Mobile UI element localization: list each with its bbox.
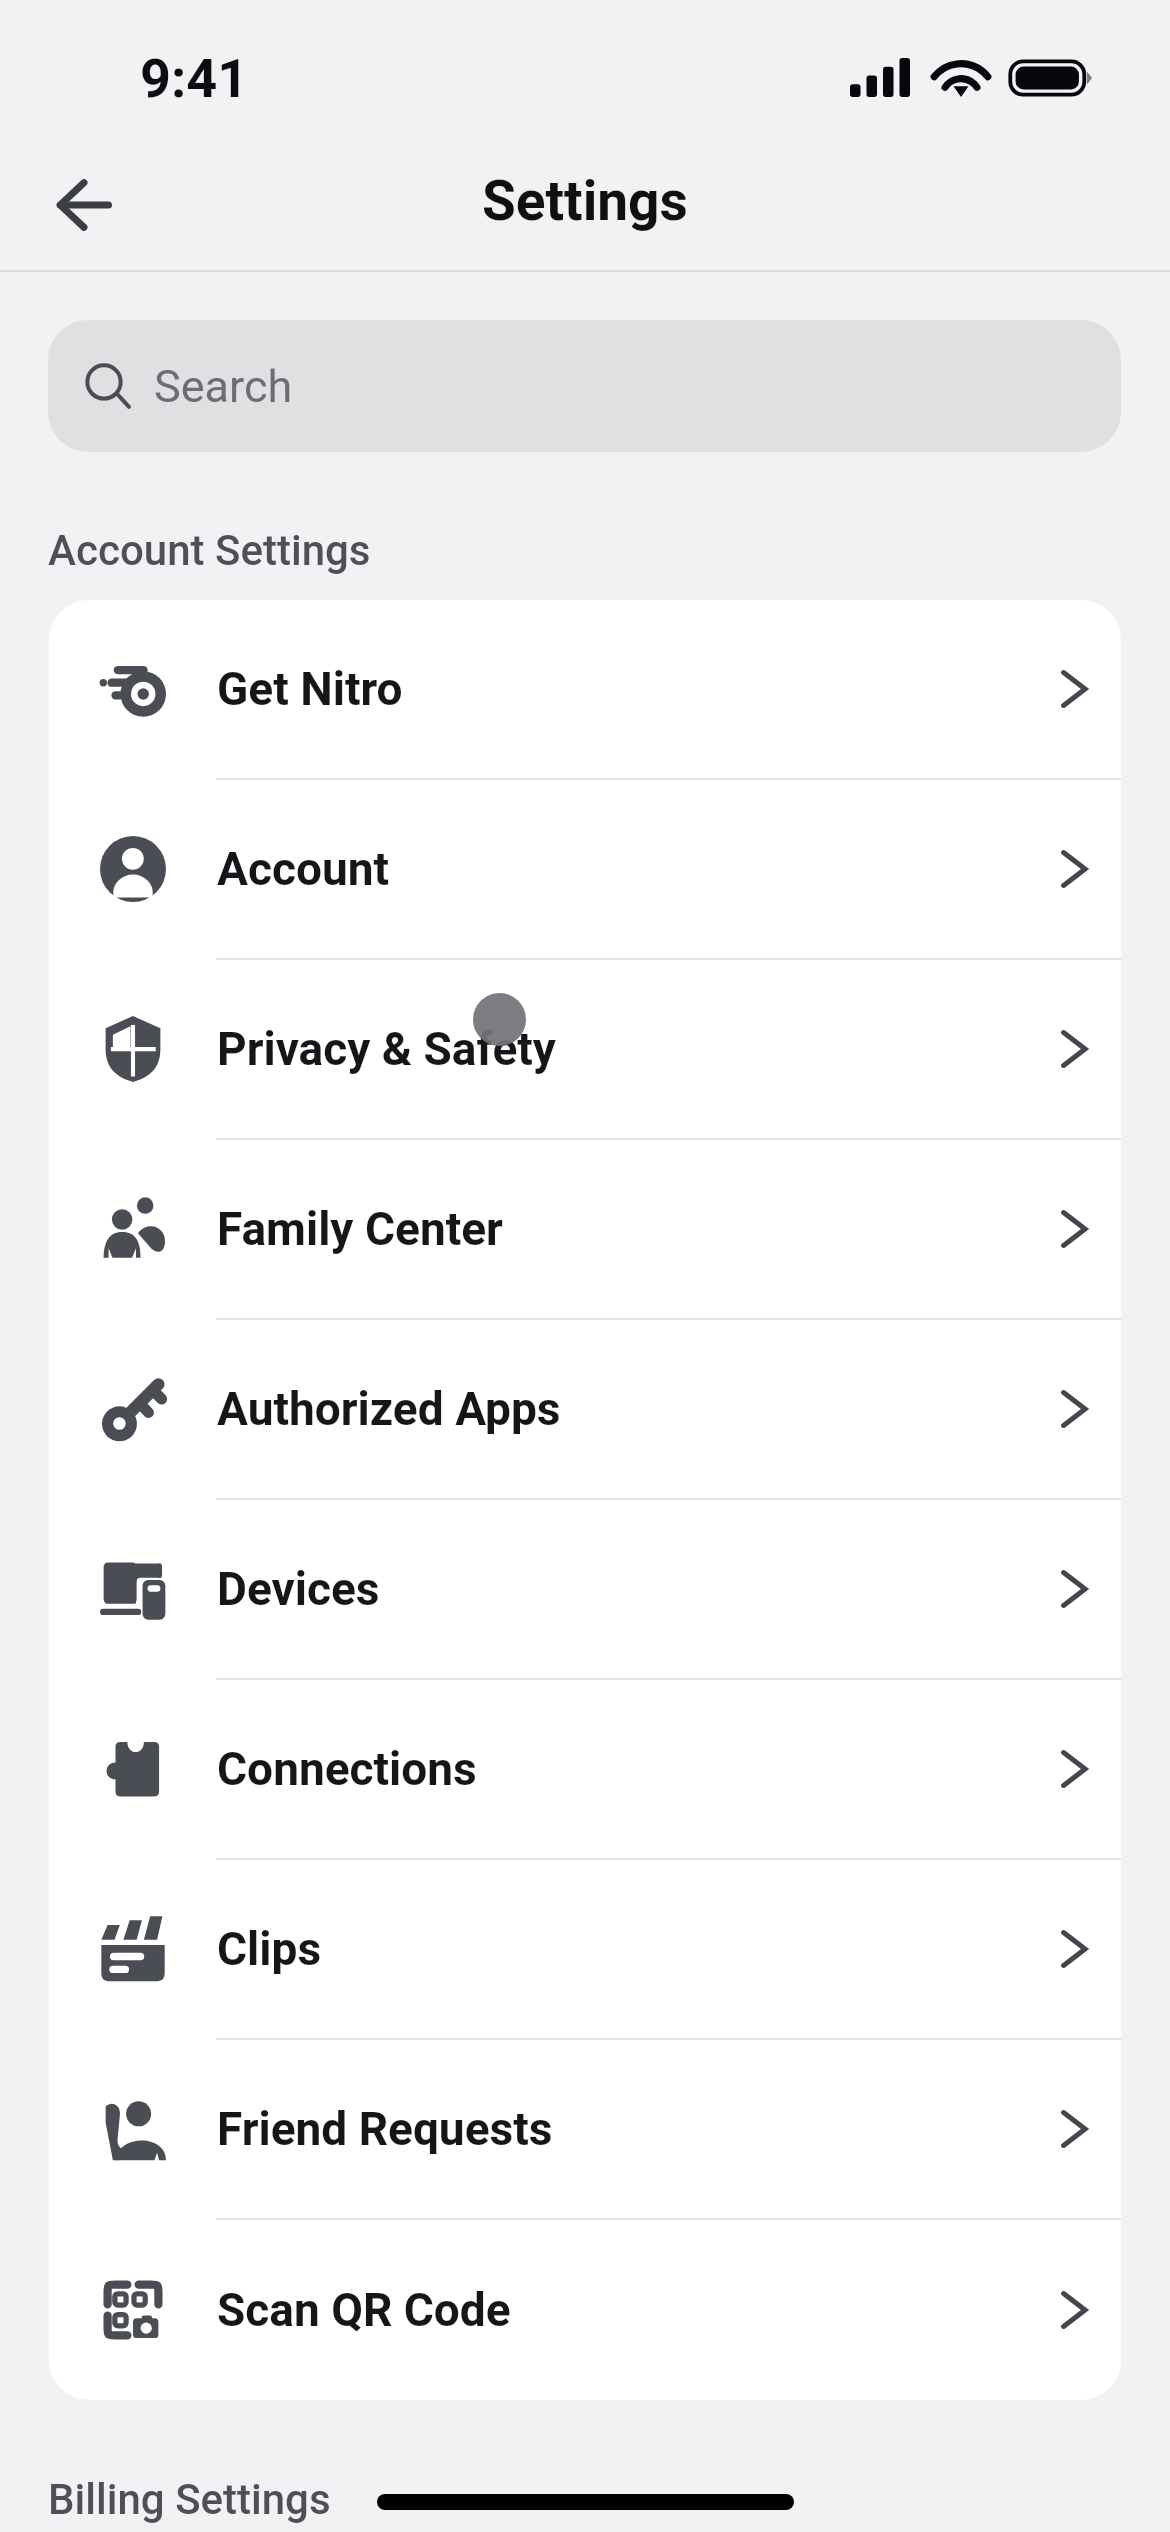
button[interactable]: Friend Requests — [49, 2040, 1121, 2220]
staticText: Scan QR Code — [217, 2283, 511, 2337]
button[interactable]: Clips — [49, 1860, 1121, 2040]
staticText: Privacy & Safety — [217, 1022, 556, 1076]
button[interactable]: Get Nitro — [49, 600, 1121, 780]
staticText: Search — [154, 360, 293, 413]
staticText: Friend Requests — [217, 2102, 553, 2156]
button[interactable]: Back — [28, 149, 140, 261]
staticText: Settings — [482, 169, 688, 233]
button[interactable]: Scan QR Code — [49, 2220, 1121, 2400]
staticText: Billing Settings — [48, 2475, 331, 2524]
button[interactable]: Connections — [49, 1680, 1121, 1860]
button[interactable]: Account — [49, 780, 1121, 960]
button[interactable]: Privacy & Safety — [49, 960, 1121, 1140]
button[interactable]: Devices — [49, 1500, 1121, 1680]
staticText: Authorized Apps — [217, 1382, 561, 1436]
button[interactable]: Search — [48, 320, 1121, 452]
button[interactable]: Family Center — [49, 1140, 1121, 1320]
staticText: Connections — [217, 1742, 477, 1796]
button[interactable]: Authorized Apps — [49, 1320, 1121, 1500]
staticText: 9:41 — [140, 47, 249, 110]
staticText: Account — [217, 842, 390, 896]
staticText: Get Nitro — [217, 662, 403, 716]
staticText: Account Settings — [48, 526, 371, 575]
staticText: Devices — [217, 1562, 380, 1616]
staticText: Clips — [217, 1922, 322, 1976]
staticText: Family Center — [217, 1202, 503, 1256]
